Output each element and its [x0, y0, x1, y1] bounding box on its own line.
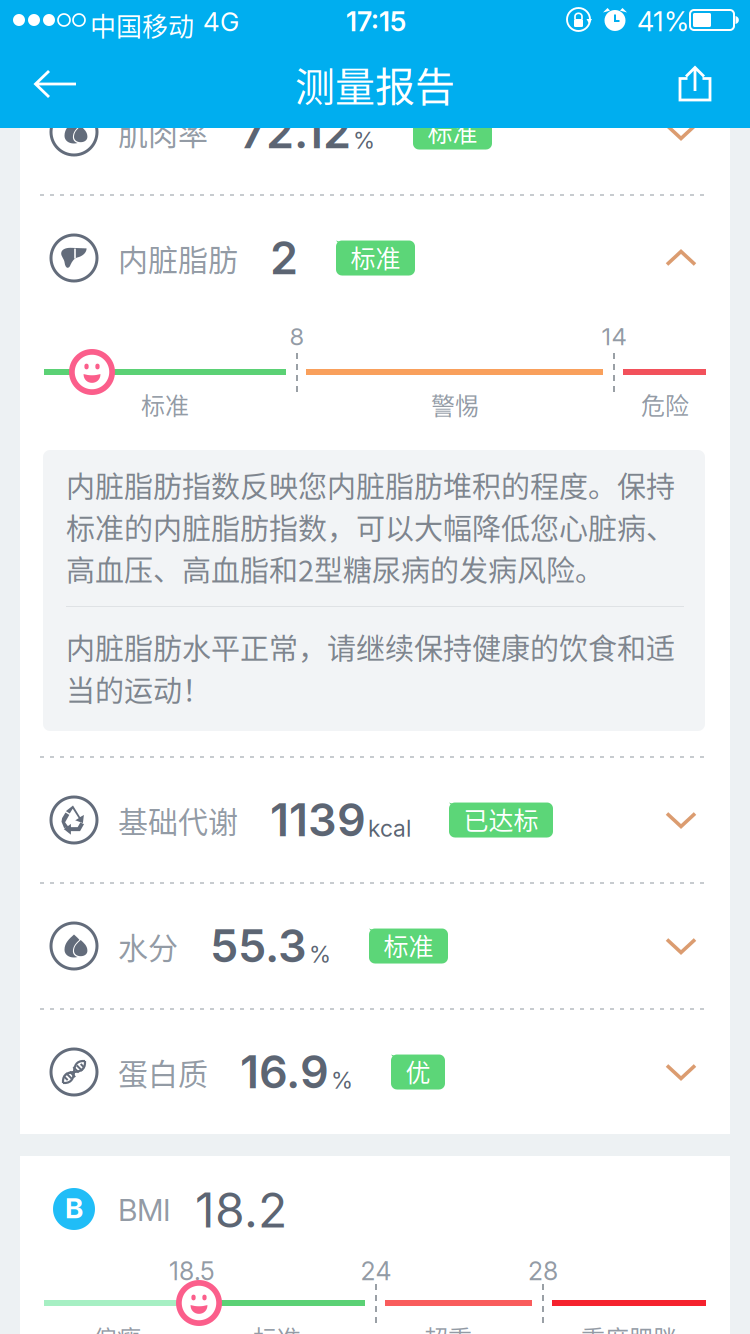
staticText: 优 — [405, 1053, 430, 1089]
staticText: 1139 — [270, 793, 366, 847]
staticText: 基础代谢 — [118, 798, 238, 842]
staticText: 24 — [360, 1256, 391, 1286]
staticText: 55.3 — [210, 919, 307, 973]
staticText: 18.2 — [195, 1181, 287, 1239]
staticText: 中国移动 — [90, 6, 194, 44]
staticText: 标准 — [427, 113, 477, 149]
staticText: 8 — [289, 322, 304, 351]
button[interactable]: Back — [0, 40, 110, 128]
staticText: B — [65, 1191, 83, 1225]
staticText: 14 — [601, 322, 626, 351]
staticText: 2 — [270, 231, 298, 285]
staticText: 内脏脂肪 — [118, 236, 238, 280]
staticText: % — [353, 126, 375, 154]
staticText: 重度肥胖 — [581, 1320, 677, 1334]
button[interactable]: 内脏脂肪 — [20, 196, 730, 320]
staticText: % — [309, 940, 331, 968]
staticText: 内脏脂肪水平正常，请继续保持健康的饮食和适当的运动！ — [66, 626, 675, 710]
staticText: 测量报告 — [295, 55, 455, 113]
staticText: 4G — [203, 6, 239, 37]
button[interactable]: 蛋白质 — [20, 1010, 730, 1134]
staticText: 标准 — [350, 239, 400, 275]
staticText: 肌肉率 — [118, 110, 208, 154]
button[interactable]: 肌肉率 — [20, 70, 730, 194]
staticText: 16.9 — [240, 1045, 329, 1099]
staticText: 超重 — [424, 1320, 472, 1334]
staticText: 41% — [637, 5, 689, 38]
button[interactable]: 基础代谢 — [20, 758, 730, 882]
staticText: 标准 — [383, 927, 433, 963]
staticText: 危险 — [641, 387, 689, 422]
staticText: kcal — [368, 814, 411, 842]
staticText: 18.5 — [169, 1256, 215, 1286]
button[interactable]: 水分 — [20, 884, 730, 1008]
staticText: 警惕 — [431, 387, 479, 422]
staticText: 已达标 — [463, 801, 538, 837]
staticText: 蛋白质 — [118, 1050, 208, 1094]
staticText: 28 — [528, 1256, 558, 1286]
staticText: 17:15 — [346, 5, 406, 38]
staticText: 72.12 — [240, 105, 351, 159]
staticText: BMI — [118, 1192, 171, 1228]
staticText: 偏瘦 — [93, 1320, 141, 1334]
button[interactable]: Share — [0, 40, 110, 128]
staticText: % — [331, 1066, 353, 1094]
staticText: 水分 — [118, 924, 178, 968]
staticText: 标准 — [253, 1320, 301, 1334]
staticText: 内脏脂肪指数反映您内脏脂肪堆积的程度。保持标准的内脏脂肪指数，可以大幅降低您心脏… — [66, 464, 675, 590]
staticText: 标准 — [141, 387, 189, 422]
